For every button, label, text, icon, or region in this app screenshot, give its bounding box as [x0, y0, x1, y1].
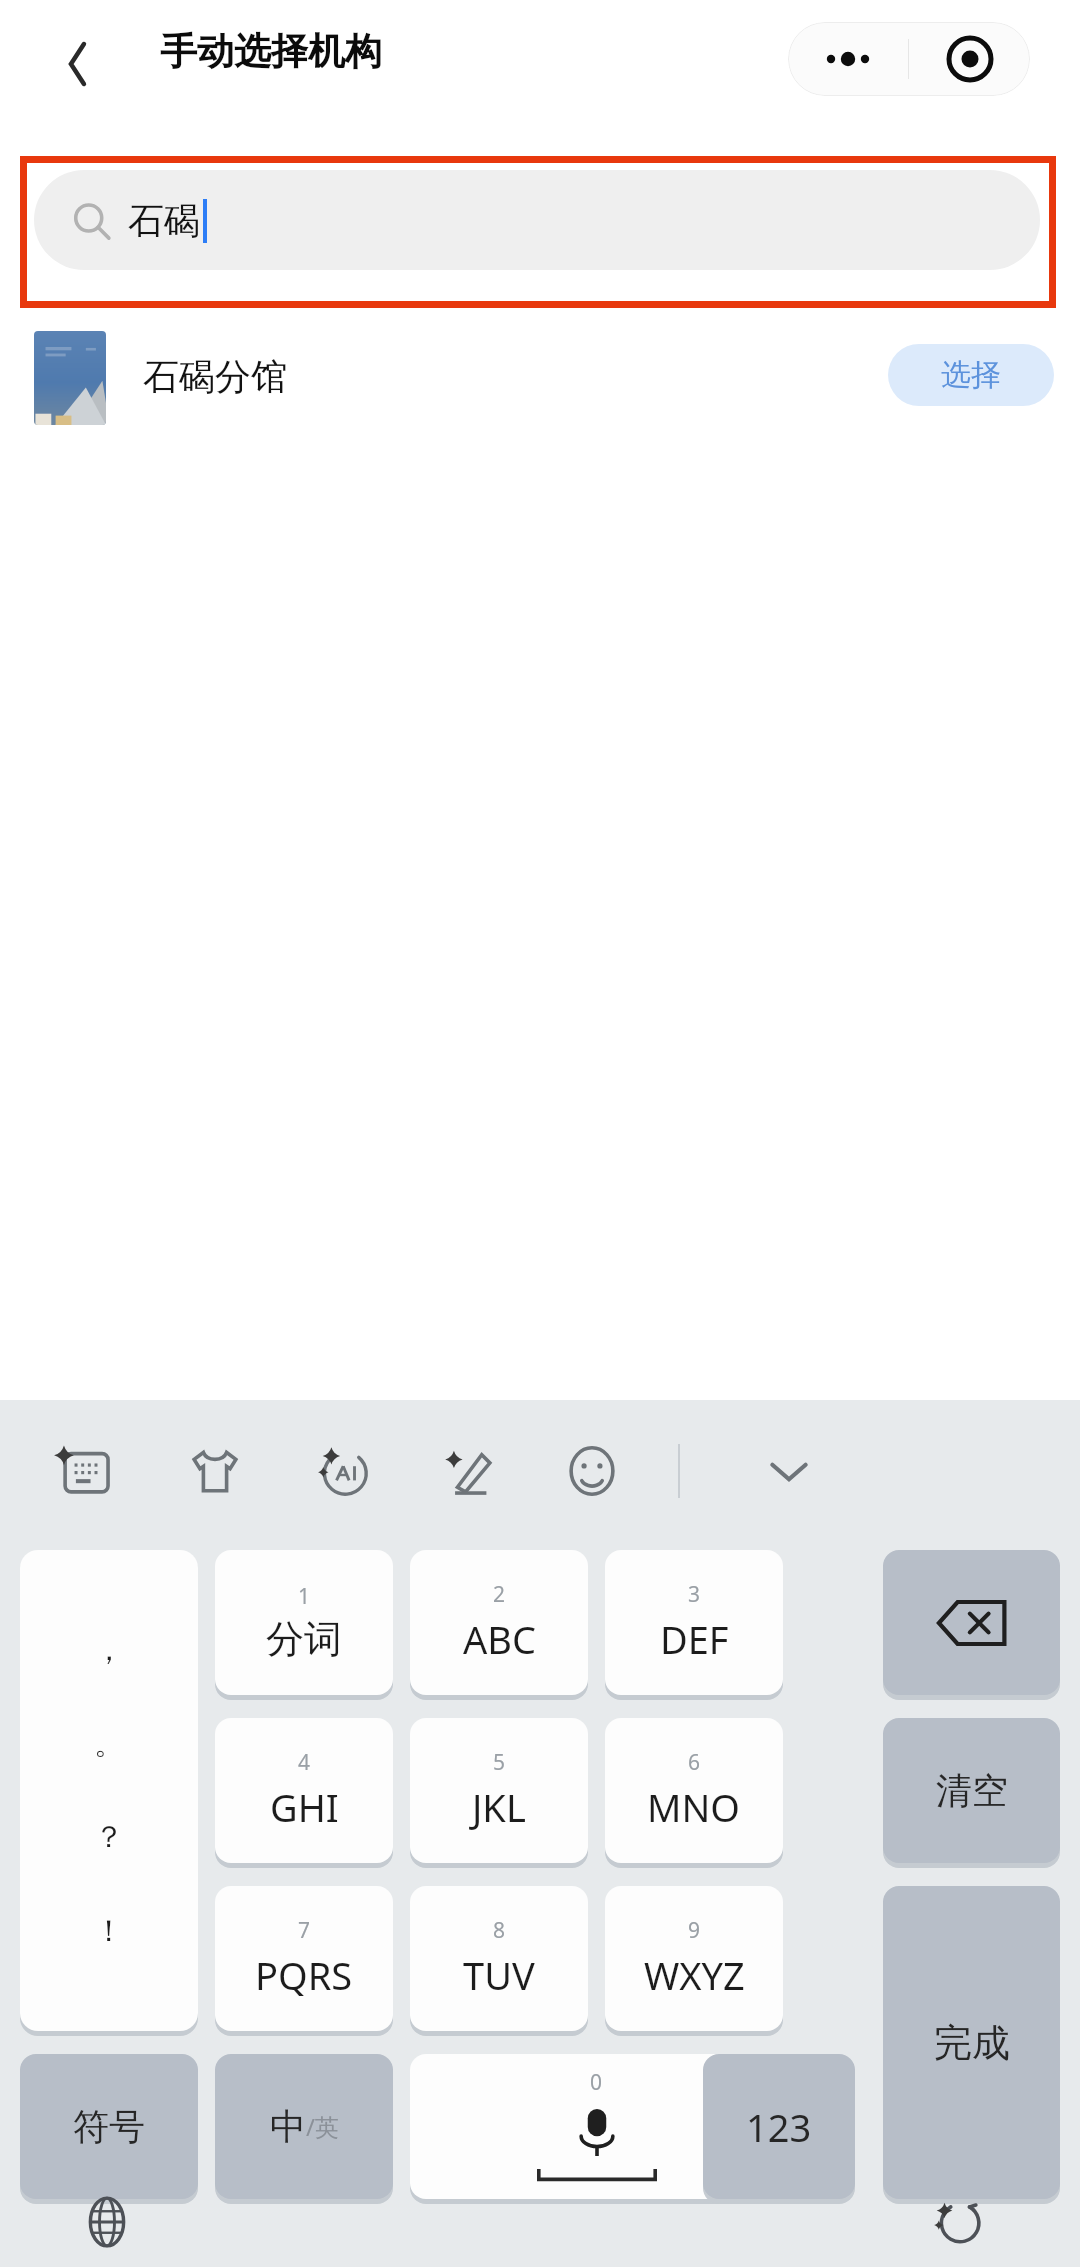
button[interactable]: Emoji	[563, 1442, 621, 1500]
staticText: 分词	[266, 1615, 342, 1663]
button[interactable]: 石碣分馆	[0, 314, 1080, 436]
button[interactable]: MNO	[605, 1718, 783, 1863]
staticText: 石碣分馆	[143, 354, 287, 399]
staticText: ，	[94, 1631, 124, 1669]
staticText: /英	[306, 2110, 339, 2143]
staticText: 完成	[934, 2019, 1010, 2067]
staticText: GHI	[270, 1781, 339, 1833]
button[interactable]: 选择	[888, 344, 1054, 406]
staticText: ABC	[463, 1613, 536, 1665]
staticText: 石碣	[128, 198, 200, 243]
staticText: 3	[688, 1580, 701, 1609]
button[interactable]: 中英切换	[215, 2054, 393, 2199]
staticText: 9	[688, 1916, 701, 1945]
button[interactable]: ABC	[410, 1550, 588, 1695]
staticText: 0	[590, 2068, 603, 2097]
staticText: 7	[298, 1916, 311, 1945]
staticText: MNO	[647, 1781, 741, 1833]
staticText: 选择	[941, 356, 1001, 394]
button[interactable]: DEF	[605, 1550, 783, 1695]
staticText: ！	[94, 1912, 124, 1950]
staticText: 中	[270, 2104, 306, 2149]
button[interactable]: Hide keyboard	[760, 1442, 818, 1500]
staticText: JKL	[472, 1781, 526, 1833]
button[interactable]: More	[788, 22, 908, 96]
button[interactable]: Delete	[883, 1550, 1060, 1695]
button[interactable]: 符号	[20, 2054, 198, 2199]
staticText: 手动选择机构	[160, 28, 382, 75]
staticText: WXYZ	[644, 1949, 745, 2001]
button[interactable]: AI	[314, 1442, 372, 1500]
button[interactable]: Back	[40, 28, 112, 100]
button[interactable]: 石碣	[34, 170, 1040, 270]
button[interactable]: Punctuation	[20, 1550, 198, 2031]
staticText: 2	[493, 1580, 506, 1609]
staticText: 1	[298, 1582, 311, 1611]
staticText: 符号	[73, 2104, 145, 2149]
staticText: 8	[493, 1916, 506, 1945]
button[interactable]: GHI	[215, 1718, 393, 1863]
button[interactable]: 清空	[883, 1718, 1060, 1863]
staticText: DEF	[660, 1613, 729, 1665]
staticText: PQRS	[255, 1949, 353, 2001]
button[interactable]: PQRS	[215, 1886, 393, 2031]
staticText: 。	[94, 1725, 124, 1763]
button[interactable]: 分词	[215, 1550, 393, 1695]
button[interactable]: Sticker keyboard	[57, 1442, 115, 1500]
staticText: 123	[746, 2101, 812, 2153]
button[interactable]: Clothing	[186, 1442, 244, 1500]
staticText: 4	[298, 1748, 311, 1777]
button[interactable]: WXYZ	[605, 1886, 783, 2031]
button[interactable]: Switch keyboard	[75, 2190, 139, 2254]
staticText: 5	[493, 1748, 506, 1777]
button[interactable]: 123	[703, 2054, 855, 2199]
staticText: 6	[688, 1748, 701, 1777]
button[interactable]: AI rewrite	[925, 2190, 989, 2254]
button[interactable]: Space	[410, 2054, 783, 2199]
button[interactable]: Close	[909, 22, 1030, 96]
staticText: ？	[94, 1818, 124, 1856]
button[interactable]: Handwriting	[440, 1442, 498, 1500]
button[interactable]: TUV	[410, 1886, 588, 2031]
button[interactable]: JKL	[410, 1718, 588, 1863]
staticText: TUV	[463, 1949, 535, 2001]
button[interactable]: 完成	[883, 1886, 1060, 2199]
staticText: 清空	[936, 1768, 1008, 1813]
